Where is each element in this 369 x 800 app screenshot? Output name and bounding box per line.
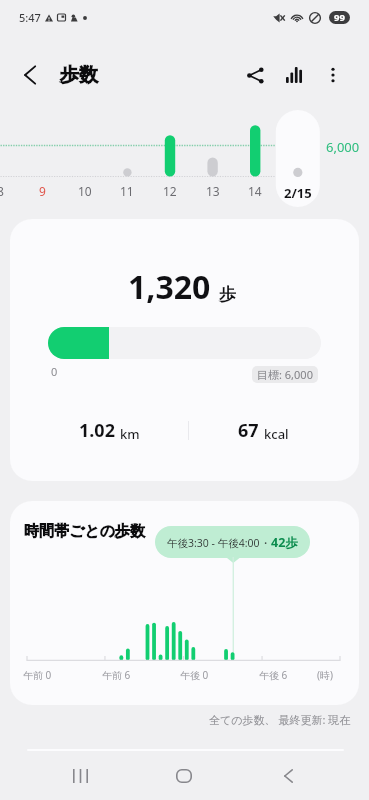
staticText: 11 <box>120 183 134 199</box>
button[interactable]: Home <box>132 752 236 800</box>
button[interactable]: More options <box>320 62 346 88</box>
staticText: ・ <box>260 536 271 550</box>
button[interactable]: Share <box>242 62 268 88</box>
staticText: 目標: 6,000 <box>257 367 313 382</box>
staticText: 99 <box>334 11 345 24</box>
button[interactable]: 1,320 <box>10 219 359 481</box>
staticText: 42歩 <box>271 534 298 551</box>
staticText: 時間帯ごとの歩数 <box>24 522 146 541</box>
staticText: 12 <box>163 183 177 199</box>
button[interactable]: Back <box>236 752 340 800</box>
staticText: 午前 0 <box>23 668 52 682</box>
staticText: 14 <box>248 183 262 199</box>
staticText: 1.02 <box>79 418 115 443</box>
staticText: 9 <box>39 183 46 199</box>
staticText: km <box>120 425 140 443</box>
staticText: 6,000 <box>326 138 360 156</box>
staticText: kcal <box>264 425 289 443</box>
staticText: 2/15 <box>284 184 312 202</box>
staticText: 全ての歩数、 最終更新: 現在 <box>209 712 351 727</box>
button[interactable]: Recent apps <box>29 752 132 800</box>
staticText: 8 <box>0 183 4 199</box>
staticText: 67 <box>238 418 259 443</box>
button[interactable]: 時間帯ごとの歩数 <box>10 501 359 705</box>
staticText: 午後3:30 - 午後4:00 <box>167 536 260 550</box>
staticText: 午前 6 <box>102 668 131 682</box>
staticText: 5:47 <box>19 10 41 25</box>
staticText: 1,320 <box>128 265 211 309</box>
button[interactable]: Back <box>20 62 46 88</box>
staticText: 10 <box>78 183 92 199</box>
staticText: 歩数 <box>60 63 98 87</box>
staticText: 13 <box>206 183 220 199</box>
staticText: 0 <box>51 364 58 379</box>
staticText: 午後 0 <box>180 668 209 682</box>
staticText: (時) <box>317 668 333 682</box>
button[interactable]: Statistics <box>281 62 307 88</box>
staticText: 歩 <box>219 284 236 305</box>
staticText: 午後 6 <box>259 668 288 682</box>
